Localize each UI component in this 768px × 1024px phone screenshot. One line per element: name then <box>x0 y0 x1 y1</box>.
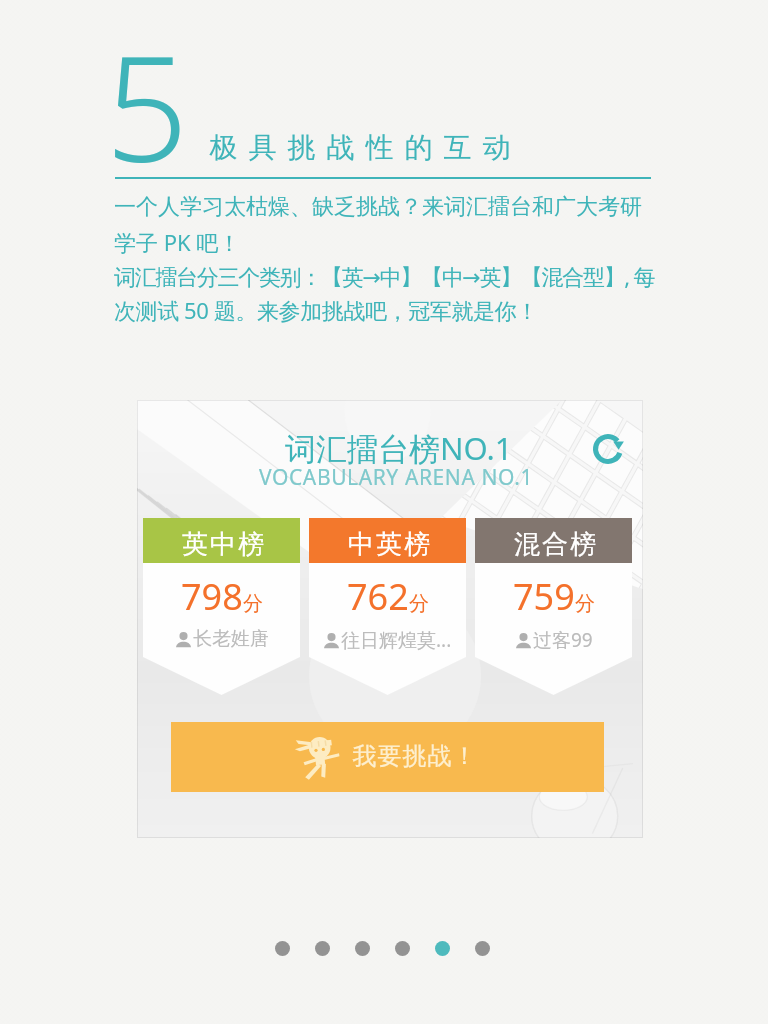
staticText: VOCABULARY ARENA NO.1 <box>259 463 534 492</box>
staticText: 中英榜 <box>347 528 431 561</box>
button[interactable]: 混合榜 <box>475 518 632 695</box>
staticText: 分 <box>575 591 595 616</box>
staticText: 英中榜 <box>181 528 265 561</box>
button[interactable]: Page 3 <box>355 940 395 956</box>
staticText: 学子 PK 吧！ <box>114 227 241 257</box>
button[interactable]: Refresh <box>593 434 623 464</box>
staticText: 一个人学习太枯燥、缺乏挑战？来词汇擂台和广大考研 <box>114 193 642 221</box>
staticText: 5 <box>105 6 189 205</box>
staticText: 往日辉煌莫... <box>341 627 452 653</box>
button[interactable]: Page 2 <box>315 940 355 956</box>
staticText: 过客99 <box>533 627 593 653</box>
staticText: 次测试 50 题。来参加挑战吧，冠军就是你！ <box>114 295 538 325</box>
staticText: 798 <box>181 572 243 621</box>
staticText: 759 <box>513 572 575 621</box>
staticText: 混合榜 <box>513 528 597 561</box>
button[interactable]: Page 5 <box>435 940 475 956</box>
button[interactable]: 中英榜 <box>309 518 466 695</box>
staticText: 词汇擂台榜NO.1 <box>285 427 513 469</box>
staticText: 长老姓唐 <box>193 627 269 651</box>
staticText: 分 <box>243 591 263 616</box>
button[interactable]: 英中榜 <box>143 518 300 695</box>
staticText: 词汇擂台分三个类别：【英→中】【中→英】【混合型】, 每 <box>114 261 655 291</box>
staticText: 我要挑战！ <box>352 741 477 771</box>
button[interactable]: 我要挑战！ <box>171 722 604 792</box>
staticText: 762 <box>347 572 409 621</box>
staticText: 分 <box>409 591 429 616</box>
button[interactable]: Page 4 <box>395 940 435 956</box>
staticText: 极具挑战性的互动 <box>204 130 516 165</box>
button[interactable]: Page 1 <box>275 940 315 956</box>
button[interactable]: Page 6 <box>475 940 515 956</box>
